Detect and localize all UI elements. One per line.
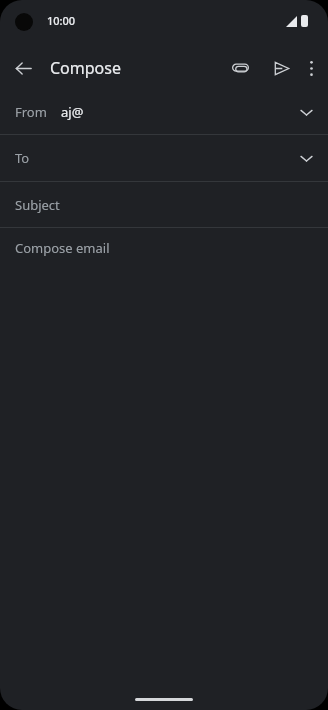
staticText: Compose xyxy=(50,57,121,79)
button[interactable]: More options xyxy=(299,56,323,80)
button[interactable]: Subject xyxy=(0,182,328,227)
button[interactable]: Attach file xyxy=(227,55,253,81)
staticText: 10:00 xyxy=(47,13,76,28)
button[interactable]: Back xyxy=(9,54,37,82)
button[interactable]: To xyxy=(0,135,328,181)
button[interactable]: Send xyxy=(269,55,295,81)
staticText: Subject xyxy=(15,196,60,214)
button[interactable]: From xyxy=(0,90,328,134)
button[interactable]: Compose email xyxy=(0,228,328,268)
staticText: aj@ xyxy=(61,103,84,121)
staticText: Compose email xyxy=(15,239,110,257)
staticText: To xyxy=(15,149,30,167)
staticText: From xyxy=(15,103,47,121)
